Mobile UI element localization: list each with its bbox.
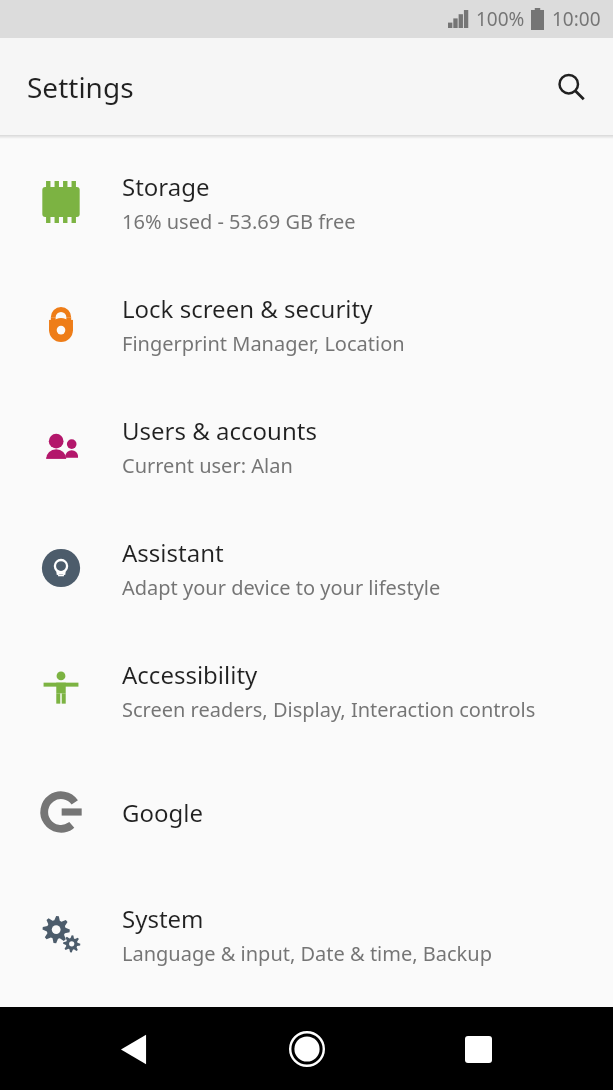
staticText: Assistant [122,536,224,569]
staticText: System [122,902,204,935]
staticText: 16% used - 53.69 GB free [122,208,356,235]
staticText: Screen readers, Display, Interaction con… [122,696,536,723]
button[interactable]: Assistant [0,507,613,629]
button[interactable]: Back [99,1013,171,1085]
button[interactable]: Google [0,751,613,873]
staticText: 100% [476,6,525,32]
staticText: Google [122,796,203,829]
staticText: 10:00 [552,6,601,32]
staticText: Language & input, Date & time, Backup [122,940,492,967]
button[interactable]: Recent apps [442,1013,514,1085]
staticText: Storage [122,170,210,203]
button[interactable]: Search [547,63,595,111]
staticText: Fingerprint Manager, Location [122,330,405,357]
button[interactable]: Home [271,1013,343,1085]
button[interactable]: Lock screen & security [0,263,613,385]
staticText: Users & accounts [122,414,317,447]
button[interactable]: Storage [0,141,613,263]
button[interactable]: Users & accounts [0,385,613,507]
staticText: Lock screen & security [122,292,373,325]
button[interactable]: Accessibility [0,629,613,751]
staticText: Settings [27,68,134,106]
staticText: Adapt your device to your lifestyle [122,574,441,601]
staticText: Accessibility [122,658,258,691]
staticText: Current user: Alan [122,452,293,479]
button[interactable]: System [0,873,613,995]
